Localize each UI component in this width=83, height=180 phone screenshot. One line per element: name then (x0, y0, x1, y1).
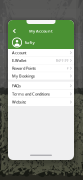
staticText: Account (12, 50, 26, 55)
staticText: 0 (67, 66, 69, 70)
staticText: FAQs (12, 83, 21, 88)
staticText: My Account (29, 28, 53, 34)
staticText: My Bookings (12, 73, 35, 79)
staticText: Terms and Conditions (12, 91, 50, 96)
button[interactable]: Reward Points (8, 64, 74, 72)
button[interactable]: Account (8, 49, 74, 56)
button[interactable]: E-Wallet (8, 57, 74, 64)
staticText: SGD 0.00 (56, 59, 69, 62)
button[interactable]: Terms and Conditions (8, 90, 74, 98)
staticText: E-Wallet (12, 58, 26, 63)
staticText: Reward Points (12, 65, 36, 71)
button[interactable]: Back (9, 26, 19, 36)
staticText: Website (12, 99, 26, 105)
button[interactable]: My Bookings (8, 72, 74, 80)
staticText: Sufiy (24, 40, 34, 45)
button[interactable]: FAQs (8, 82, 74, 90)
button[interactable]: Website (8, 98, 74, 106)
